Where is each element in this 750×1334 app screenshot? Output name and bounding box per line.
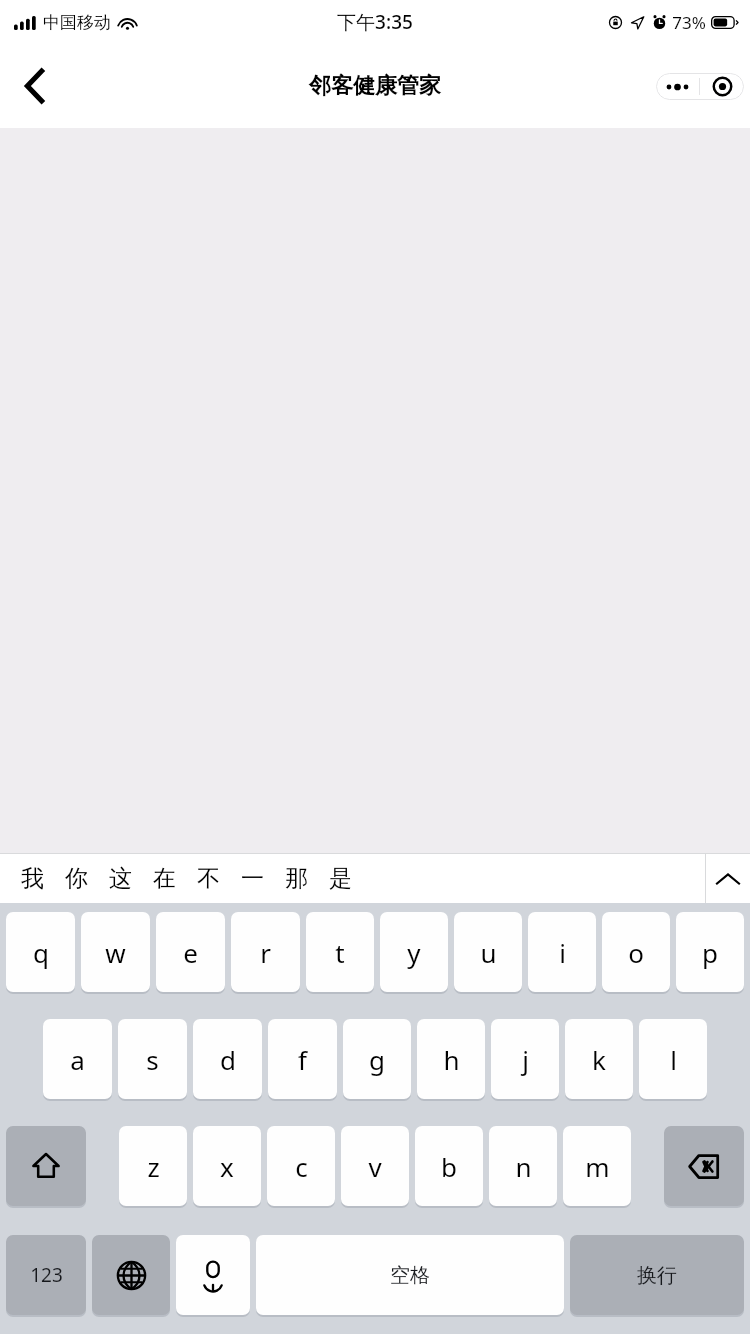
staticText: l <box>670 1042 677 1077</box>
button[interactable]: e <box>156 912 225 992</box>
button[interactable]: b <box>415 1126 483 1206</box>
button[interactable]: v <box>341 1126 409 1206</box>
button[interactable]: j <box>491 1019 559 1099</box>
staticText: b <box>441 1149 457 1184</box>
staticText: 73% <box>672 11 706 34</box>
staticText: p <box>702 935 718 970</box>
button[interactable]: d <box>193 1019 262 1099</box>
staticText: h <box>443 1042 460 1077</box>
button[interactable]: n <box>489 1126 557 1206</box>
button[interactable]: 在 <box>142 854 186 903</box>
staticText: 空格 <box>390 1263 430 1288</box>
staticText: t <box>335 935 345 970</box>
button[interactable]: 这 <box>98 854 142 903</box>
button[interactable]: Back <box>6 58 62 114</box>
button[interactable]: Switch language <box>92 1235 170 1315</box>
button[interactable]: 换行 <box>570 1235 744 1315</box>
button[interactable]: f <box>268 1019 337 1099</box>
button[interactable]: g <box>343 1019 411 1099</box>
staticText: m <box>585 1149 610 1184</box>
staticText: v <box>368 1149 382 1184</box>
staticText: a <box>70 1042 85 1077</box>
button[interactable]: i <box>528 912 596 992</box>
staticText: 邻客健康管家 <box>309 72 441 100</box>
button[interactable]: Shift <box>6 1126 86 1206</box>
button[interactable]: Expand candidates <box>706 854 750 903</box>
button[interactable]: p <box>676 912 744 992</box>
staticText: j <box>522 1042 529 1077</box>
staticText: 是 <box>329 864 352 893</box>
button[interactable]: 空格 <box>256 1235 564 1315</box>
button[interactable]: More <box>656 73 699 100</box>
staticText: o <box>628 935 644 970</box>
button[interactable]: Numbers <box>6 1235 86 1315</box>
button[interactable]: a <box>43 1019 112 1099</box>
staticText: w <box>105 935 126 970</box>
button[interactable]: h <box>417 1019 485 1099</box>
staticText: 你 <box>65 864 88 893</box>
button[interactable]: o <box>602 912 670 992</box>
button[interactable]: q <box>6 912 75 992</box>
button[interactable]: x <box>193 1126 261 1206</box>
button[interactable]: y <box>380 912 448 992</box>
staticText: u <box>480 935 497 970</box>
button[interactable]: w <box>81 912 150 992</box>
staticText: g <box>369 1042 385 1077</box>
button[interactable]: t <box>306 912 374 992</box>
staticText: 换行 <box>637 1263 677 1288</box>
staticText: 不 <box>197 864 220 893</box>
staticText: 123 <box>30 1262 63 1288</box>
staticText: c <box>295 1149 308 1184</box>
staticText: d <box>220 1042 236 1077</box>
button[interactable]: z <box>119 1126 187 1206</box>
button[interactable]: m <box>563 1126 631 1206</box>
button[interactable]: r <box>231 912 300 992</box>
button[interactable]: 你 <box>54 854 98 903</box>
staticText: 中国移动 <box>43 12 111 33</box>
button[interactable]: u <box>454 912 522 992</box>
staticText: 那 <box>285 864 308 893</box>
staticText: 这 <box>109 864 132 893</box>
staticText: 下午3:35 <box>337 9 413 35</box>
button[interactable]: 是 <box>318 854 362 903</box>
staticText: z <box>147 1149 160 1184</box>
staticText: y <box>407 935 421 970</box>
staticText: k <box>592 1042 606 1077</box>
button[interactable]: k <box>565 1019 633 1099</box>
staticText: 在 <box>153 864 176 893</box>
button[interactable]: Close <box>700 73 744 100</box>
staticText: 一 <box>241 864 264 893</box>
staticText: n <box>515 1149 532 1184</box>
staticText: x <box>220 1149 234 1184</box>
button[interactable]: 不 <box>186 854 230 903</box>
staticText: s <box>146 1042 159 1077</box>
button[interactable]: l <box>639 1019 707 1099</box>
staticText: e <box>183 935 198 970</box>
button[interactable]: s <box>118 1019 187 1099</box>
staticText: i <box>559 935 566 970</box>
button[interactable]: Voice input <box>176 1235 250 1315</box>
button[interactable]: Backspace <box>664 1126 744 1206</box>
staticText: f <box>298 1042 307 1077</box>
button[interactable]: 那 <box>274 854 318 903</box>
button[interactable]: 我 <box>10 854 54 903</box>
button[interactable]: 一 <box>230 854 274 903</box>
staticText: r <box>260 935 271 970</box>
staticText: 我 <box>21 864 44 893</box>
button[interactable]: c <box>267 1126 335 1206</box>
staticText: q <box>33 935 49 970</box>
